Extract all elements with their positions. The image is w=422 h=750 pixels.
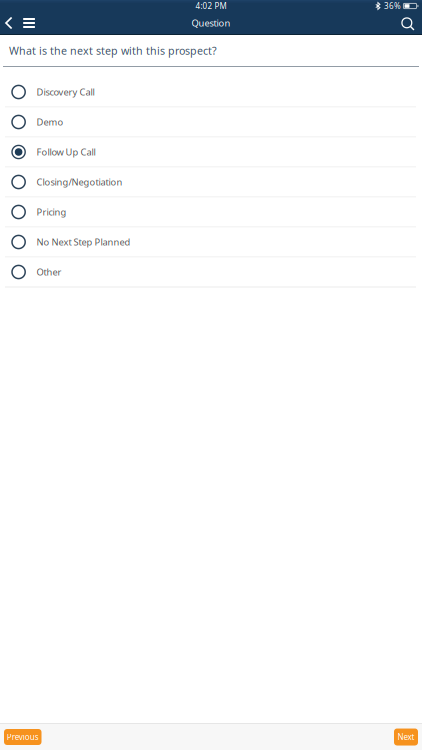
button[interactable]: Demo (0, 107, 422, 137)
staticText: No Next Step Planned (37, 236, 131, 248)
button[interactable]: Other (0, 257, 422, 287)
staticText: Previous (7, 732, 39, 742)
staticText: Other (37, 266, 62, 278)
staticText: Next (397, 732, 414, 742)
button[interactable]: Previous (4, 729, 41, 745)
button[interactable]: Next (394, 728, 418, 745)
staticText: 36% (384, 1, 401, 11)
staticText: Discovery Call (37, 86, 95, 98)
button[interactable]: Menu (17, 12, 41, 34)
staticText: Demo (37, 116, 64, 128)
button[interactable]: No Next Step Planned (0, 227, 422, 257)
button[interactable]: Follow Up Call (0, 137, 422, 167)
staticText: Question (191, 17, 230, 29)
button[interactable]: Pricing (0, 197, 422, 227)
button[interactable]: Back (1, 12, 17, 34)
button[interactable]: Discovery Call (0, 77, 422, 107)
staticText: Pricing (37, 206, 67, 218)
staticText: Follow Up Call (37, 146, 96, 158)
staticText: 4:02 PM (195, 1, 226, 11)
staticText: What is the next step with this prospect… (9, 43, 217, 58)
staticText: Closing/Negotiation (37, 176, 123, 188)
button[interactable]: Search (397, 12, 419, 34)
button[interactable]: Closing/Negotiation (0, 167, 422, 197)
